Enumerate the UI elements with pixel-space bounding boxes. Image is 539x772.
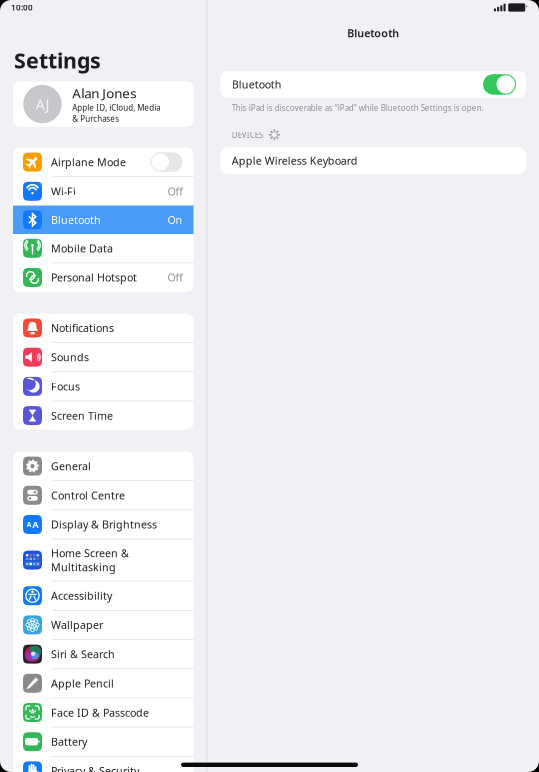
button[interactable]: General	[13, 452, 193, 480]
button[interactable]: Accessibility	[13, 581, 193, 610]
button[interactable]: Apple Pencil	[13, 669, 193, 698]
button[interactable]: Bluetooth	[13, 205, 193, 234]
button[interactable]: Home Screen &	[13, 539, 193, 581]
staticText: 10:00	[11, 2, 33, 13]
staticText: Off	[167, 184, 182, 198]
staticText: Display & Brightness	[51, 517, 157, 532]
staticText: Control Centre	[51, 488, 125, 502]
button[interactable]: AJ	[0, 81, 206, 127]
staticText: Apple Pencil	[51, 676, 114, 690]
staticText: Focus	[51, 379, 80, 393]
button[interactable]: Privacy & Security	[13, 757, 193, 772]
button[interactable]: Wi-Fi	[13, 177, 193, 205]
staticText: This iPad is discoverable as “iPad” whil…	[232, 103, 484, 113]
staticText: Personal Hotspot	[51, 270, 137, 285]
staticText: AJ	[35, 94, 49, 114]
staticText: Bluetooth	[51, 213, 101, 227]
staticText: Battery	[51, 735, 87, 749]
staticText: Accessibility	[51, 589, 112, 603]
staticText: Bluetooth	[347, 26, 399, 40]
staticText: Home Screen &	[51, 546, 129, 560]
staticText: Privacy & Security	[51, 764, 139, 772]
staticText: A	[32, 518, 38, 531]
staticText: Apple ID, iCloud, Media	[72, 102, 160, 113]
staticText: Alan Jones	[72, 84, 136, 102]
staticText: Bluetooth	[232, 77, 282, 91]
staticText: Off	[167, 270, 182, 285]
button[interactable]: Personal Hotspot	[13, 263, 193, 292]
staticText: Multitasking	[51, 560, 116, 574]
button[interactable]: Focus	[13, 372, 193, 401]
button[interactable]: Wallpaper	[13, 611, 193, 639]
button[interactable]: Sounds	[13, 343, 193, 371]
staticText: DEVICES	[232, 129, 263, 140]
staticText: Face ID & Passcode	[51, 705, 149, 720]
staticText: Mobile Data	[51, 241, 113, 255]
staticText: Sounds	[51, 350, 89, 364]
staticText: A	[27, 520, 32, 529]
staticText: Siri & Search	[51, 647, 115, 661]
button[interactable]: Siri & Search	[13, 640, 193, 668]
staticText: Wallpaper	[51, 618, 103, 632]
button[interactable]: Screen Time	[13, 401, 193, 430]
staticText: Screen Time	[51, 408, 113, 423]
button[interactable]: A	[13, 510, 193, 539]
staticText: Wi-Fi	[51, 184, 76, 198]
staticText: & Purchases	[72, 113, 119, 124]
staticText: Settings	[14, 46, 101, 74]
staticText: On	[167, 213, 182, 227]
staticText: General	[51, 459, 91, 473]
button[interactable]: Mobile Data	[13, 234, 193, 262]
button[interactable]: Battery	[13, 727, 193, 756]
button[interactable]: Airplane Mode	[13, 148, 193, 176]
staticText: Apple Wireless Keyboard	[232, 153, 358, 168]
button[interactable]: Control Centre	[13, 481, 193, 509]
staticText: Airplane Mode	[51, 155, 126, 169]
button[interactable]: Face ID & Passcode	[13, 698, 193, 727]
staticText: Notifications	[51, 321, 114, 335]
button[interactable]: Notifications	[13, 314, 193, 342]
